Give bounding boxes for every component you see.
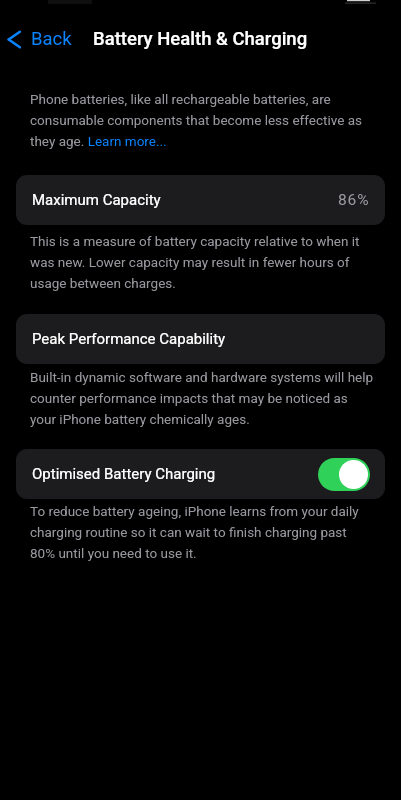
button[interactable]: Learn more <box>88 131 168 149</box>
staticText: Back <box>31 28 72 50</box>
staticText: 86% <box>338 191 370 209</box>
button[interactable]: Optimised Battery Charging toggle <box>318 458 370 491</box>
button[interactable]: Maximum Capacity <box>16 175 385 225</box>
staticText: Battery Health & Charging <box>93 28 308 50</box>
staticText: Phone batteries, like all rechargeable b… <box>30 91 375 149</box>
button[interactable]: Back <box>0 24 80 54</box>
staticText: Built-in dynamic software and hardware s… <box>30 369 375 427</box>
staticText: To reduce battery ageing, iPhone learns … <box>30 503 375 561</box>
staticText: This is a measure of battery capacity re… <box>30 233 375 291</box>
staticText: Optimised Battery Charging <box>32 465 216 483</box>
button[interactable]: Optimised Battery Charging <box>16 449 385 499</box>
staticText: Peak Performance Capability <box>32 330 226 348</box>
staticText: Maximum Capacity <box>32 191 161 209</box>
button[interactable]: Peak Performance Capability <box>16 314 385 364</box>
